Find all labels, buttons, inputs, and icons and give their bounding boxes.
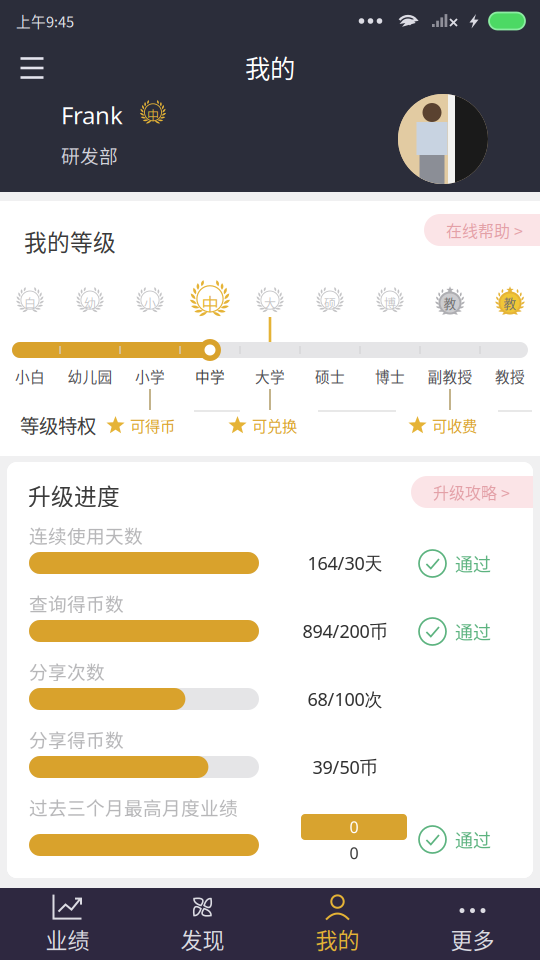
staticText: 分享得币数 xyxy=(29,725,124,752)
staticText: 中 xyxy=(147,106,159,124)
staticText: 升级进度 xyxy=(28,479,120,511)
staticText: 过去三个月最高月度业绩 xyxy=(29,793,238,820)
button[interactable]: Menu xyxy=(0,45,64,89)
staticText: 教 xyxy=(503,294,516,312)
staticText: 上午9:45 xyxy=(16,10,74,32)
staticText: 业绩 xyxy=(45,923,89,955)
staticText: 教 xyxy=(443,294,456,312)
staticText: 发现 xyxy=(180,923,224,955)
staticText: 硕士 xyxy=(315,365,345,387)
button[interactable]: 更多 xyxy=(405,888,540,960)
button[interactable]: 我的 xyxy=(270,888,405,960)
staticText: 等级特权 xyxy=(20,411,96,439)
staticText: 大 xyxy=(264,294,276,312)
button[interactable]: 发现 xyxy=(135,888,270,960)
staticText: 通过 xyxy=(455,550,491,577)
button[interactable]: 升级攻略 > xyxy=(411,476,540,508)
staticText: 可得币 xyxy=(130,414,175,436)
staticText: 中学 xyxy=(195,365,225,387)
staticText: Frank xyxy=(61,99,123,131)
staticText: 博 xyxy=(384,294,396,312)
staticText: 可兑换 xyxy=(252,414,297,436)
staticText: 升级攻略 > xyxy=(433,480,510,504)
button[interactable]: 业绩 xyxy=(0,888,135,960)
staticText: 白 xyxy=(24,294,36,312)
staticText: 小 xyxy=(144,294,156,312)
staticText: 中 xyxy=(201,290,218,316)
staticText: 硕 xyxy=(324,294,336,312)
staticText: 39/50币 xyxy=(312,755,377,779)
staticText: 大学 xyxy=(255,365,285,387)
staticText: 通过 xyxy=(455,618,491,645)
staticText: 0 xyxy=(349,842,358,864)
button[interactable]: 在线帮助 > xyxy=(424,214,540,246)
staticText: 小白 xyxy=(15,365,45,387)
staticText: 0 xyxy=(349,816,358,838)
staticText: 894/200币 xyxy=(302,619,387,643)
staticText: 可收费 xyxy=(432,414,477,436)
staticText: 教授 xyxy=(495,365,525,387)
staticText: 幼儿园 xyxy=(67,365,112,387)
staticText: 幼 xyxy=(84,294,96,312)
staticText: 我的 xyxy=(315,923,359,955)
staticText: 分享次数 xyxy=(29,657,105,684)
staticText: 副教授 xyxy=(427,365,472,387)
staticText: 我的 xyxy=(245,49,295,85)
staticText: 连续使用天数 xyxy=(29,521,143,548)
staticText: 通过 xyxy=(455,826,491,853)
staticText: 更多 xyxy=(450,923,494,955)
staticText: 164/30天 xyxy=(307,551,382,575)
staticText: 我的等级 xyxy=(24,225,116,257)
staticText: 博士 xyxy=(375,365,405,387)
staticText: 查询得币数 xyxy=(29,589,124,616)
staticText: 68/100次 xyxy=(307,687,382,711)
staticText: 研发部 xyxy=(61,141,118,168)
staticText: 在线帮助 > xyxy=(446,218,523,242)
staticText: 小学 xyxy=(135,365,165,387)
